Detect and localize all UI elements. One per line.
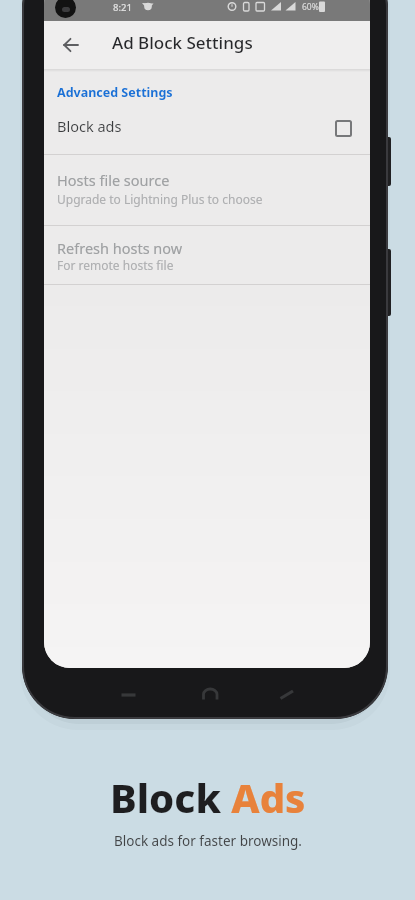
staticText: Block ads: [57, 116, 122, 136]
staticText: For remote hosts file: [57, 257, 174, 273]
button[interactable]: [44, 103, 370, 154]
staticText: Ad Block Settings: [112, 31, 253, 54]
staticText: Hosts file source: [57, 170, 170, 190]
staticText: Advanced Settings: [57, 84, 173, 101]
button[interactable]: [335, 120, 352, 137]
staticText: Block ads for faster browsing.: [114, 832, 302, 850]
staticText: Refresh hosts now: [57, 238, 183, 258]
staticText: 8:21: [113, 1, 132, 14]
staticText: Block Ads: [110, 770, 306, 818]
button[interactable]: [44, 155, 370, 225]
button[interactable]: [111, 678, 147, 710]
button[interactable]: [192, 678, 228, 710]
staticText: 60%: [302, 1, 319, 13]
button[interactable]: [44, 226, 370, 284]
button[interactable]: [55, 29, 87, 61]
button[interactable]: [269, 678, 305, 710]
button[interactable]: Advanced Settings: [44, 0, 160, 18]
staticText: Upgrade to Lightning Plus to choose: [57, 191, 263, 207]
